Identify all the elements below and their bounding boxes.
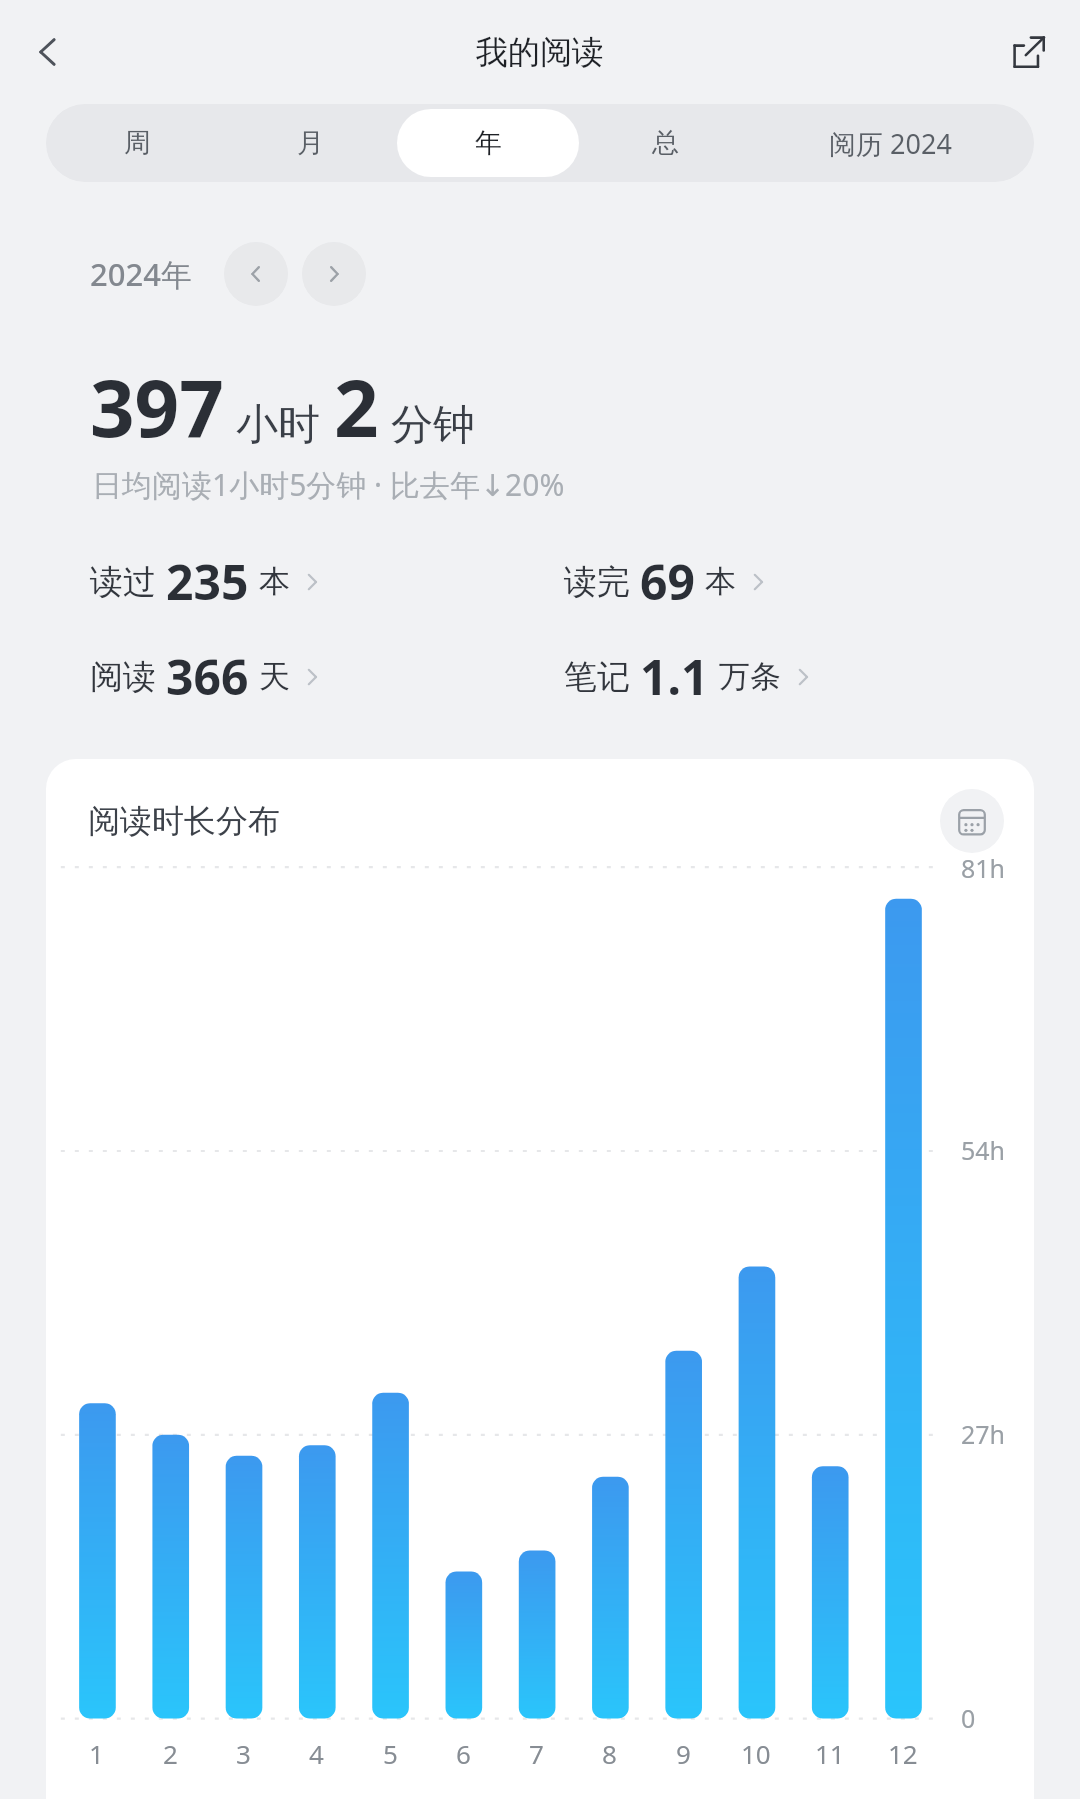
staticText: 2 (334, 354, 379, 460)
button[interactable]: 周 (51, 109, 224, 177)
staticText: 6 (456, 1736, 471, 1771)
staticText: 读完 (564, 561, 630, 603)
staticText: 81h (961, 851, 1006, 885)
staticText: 27h (961, 1417, 1006, 1451)
staticText: 4 (309, 1736, 324, 1771)
staticText: 2024年 (90, 253, 192, 295)
staticText: 5 (383, 1736, 398, 1771)
staticText: 阅读时长分布 (88, 801, 280, 841)
button[interactable]: Next year (302, 242, 366, 306)
staticText: 9 (676, 1736, 691, 1771)
staticText: 读过 (90, 561, 156, 603)
staticText: 10 (741, 1736, 771, 1771)
staticText: 分钟 (391, 399, 475, 452)
staticText: 万条 (719, 657, 781, 696)
button[interactable]: Calendar (940, 789, 1004, 853)
staticText: 1.1 (640, 644, 709, 709)
staticText: 235 (166, 549, 249, 614)
staticText: 年 (475, 126, 502, 160)
button[interactable]: 读过 (90, 549, 322, 614)
staticText: 阅读 (90, 656, 156, 698)
staticText: 天 (259, 657, 290, 696)
button[interactable]: Previous year (224, 242, 288, 306)
button[interactable]: Back (16, 20, 80, 84)
button[interactable]: 阅历 2024 (752, 109, 1029, 177)
staticText: 小时 (236, 399, 320, 452)
staticText: 3 (236, 1736, 251, 1771)
staticText: 本 (705, 562, 736, 601)
button[interactable]: 阅读 (90, 644, 322, 709)
staticText: 1 (89, 1736, 104, 1771)
staticText: 阅历 2024 (829, 125, 952, 162)
button[interactable]: 读完 (564, 549, 768, 614)
staticText: 本 (259, 562, 290, 601)
button[interactable]: 月 (224, 109, 397, 177)
staticText: 2 (163, 1736, 178, 1771)
button[interactable]: 总 (579, 109, 752, 177)
staticText: 7 (529, 1736, 544, 1771)
staticText: 366 (166, 644, 249, 709)
staticText: 0 (961, 1701, 976, 1735)
staticText: 54h (961, 1133, 1006, 1167)
button[interactable]: 笔记 (564, 644, 813, 709)
staticText: 笔记 (564, 656, 630, 698)
staticText: 12 (888, 1736, 918, 1771)
staticText: 69 (640, 549, 695, 614)
staticText: 397 (90, 354, 224, 460)
button[interactable]: Share (998, 21, 1060, 83)
staticText: 总 (652, 126, 679, 160)
staticText: 月 (297, 126, 324, 160)
button[interactable]: 年 (397, 109, 579, 177)
staticText: 8 (602, 1736, 617, 1771)
staticText: 周 (124, 126, 151, 160)
staticText: 我的阅读 (476, 32, 604, 72)
staticText: 11 (815, 1736, 845, 1771)
staticText: 日均阅读1小时5分钟 · 比去年↓20% (92, 464, 565, 505)
